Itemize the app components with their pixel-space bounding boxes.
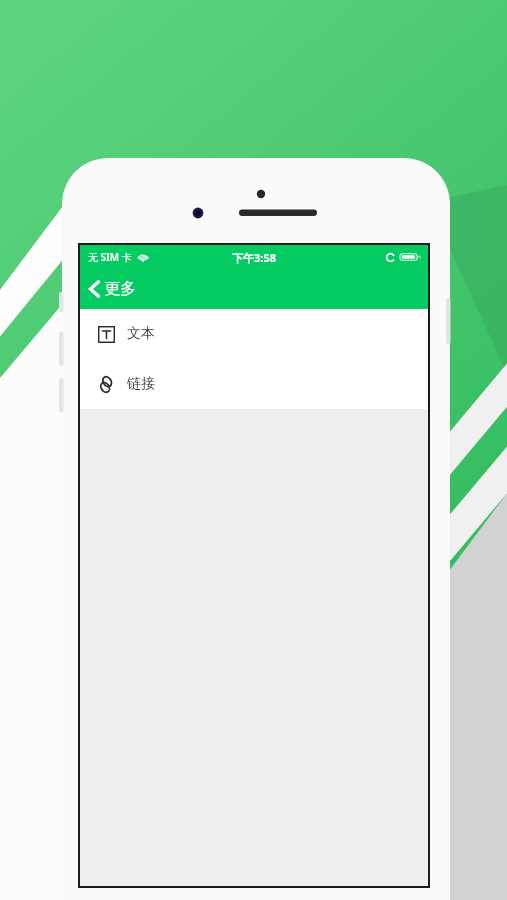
button[interactable]: 链接 [80,359,428,409]
button[interactable]: 文本 [80,309,428,359]
staticText: 文本 [127,325,155,343]
other: Back [89,280,100,298]
button[interactable]: Back [80,269,150,309]
staticText: 更多 [104,279,136,299]
staticText: 链接 [127,375,155,393]
staticText: 下午3:58 [232,250,276,265]
staticText: 无 SIM 卡 [88,250,132,264]
